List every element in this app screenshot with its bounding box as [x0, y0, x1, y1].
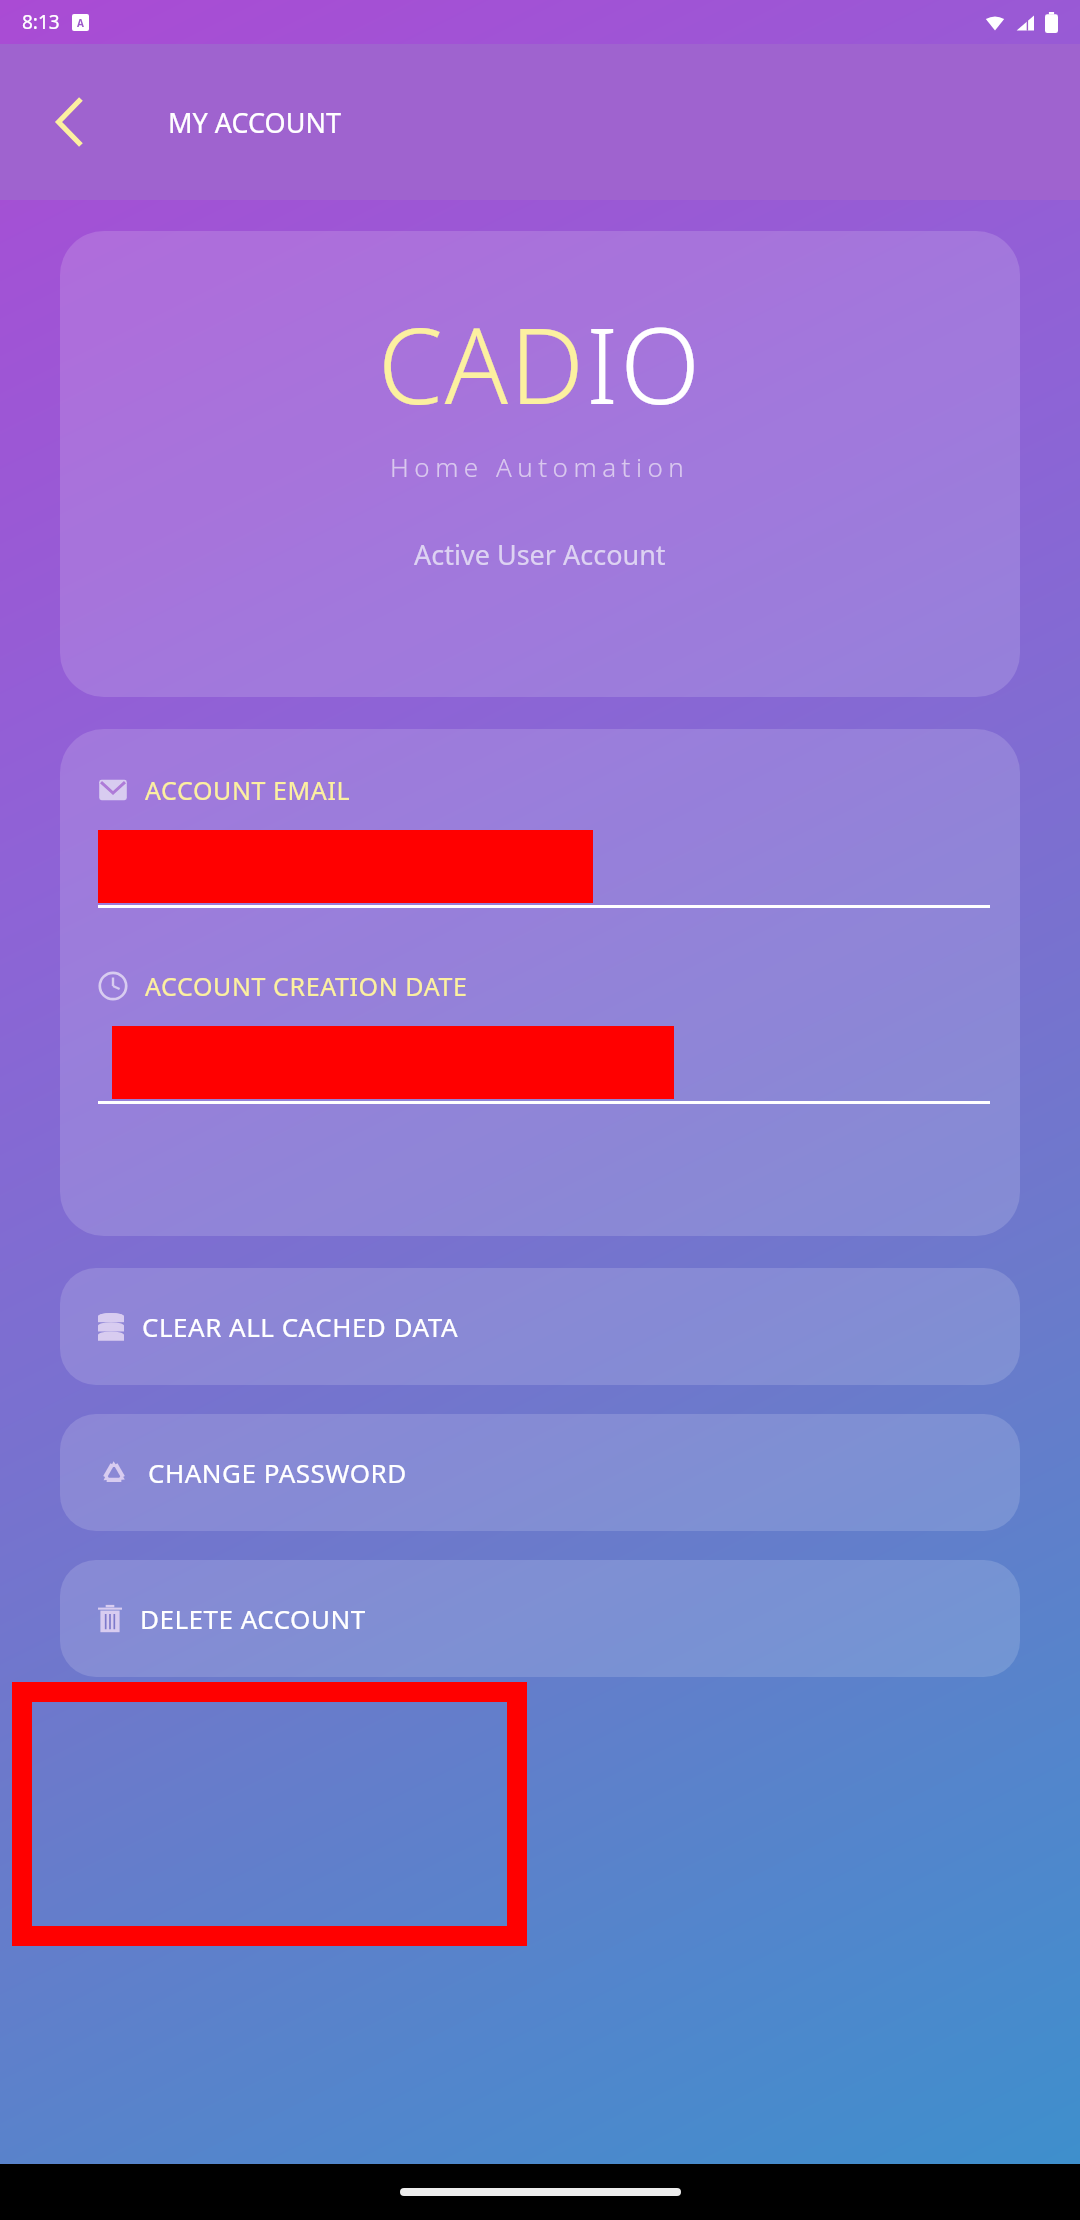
staticText: CLEAR ALL CACHED DATA — [142, 1309, 459, 1344]
staticText: CAD — [378, 293, 586, 435]
staticText: 8:13 — [22, 9, 60, 35]
staticText: DELETE ACCOUNT — [140, 1601, 366, 1636]
button[interactable]: CHANGE PASSWORD — [60, 1414, 1020, 1531]
button[interactable]: CLEAR ALL CACHED DATA — [60, 1268, 1020, 1385]
button[interactable]: CAD — [60, 231, 1020, 697]
staticText: A — [77, 16, 84, 30]
button[interactable]: DELETE ACCOUNT — [60, 1560, 1020, 1677]
staticText: ACCOUNT EMAIL — [145, 773, 351, 807]
staticText: Home Automation — [390, 449, 690, 484]
staticText: CHANGE PASSWORD — [148, 1455, 407, 1490]
staticText: Active User Account — [414, 536, 666, 573]
staticText: IO — [586, 293, 703, 435]
button[interactable]: Back — [42, 94, 98, 150]
staticText: MY ACCOUNT — [168, 104, 341, 141]
staticText: ACCOUNT CREATION DATE — [145, 969, 468, 1003]
